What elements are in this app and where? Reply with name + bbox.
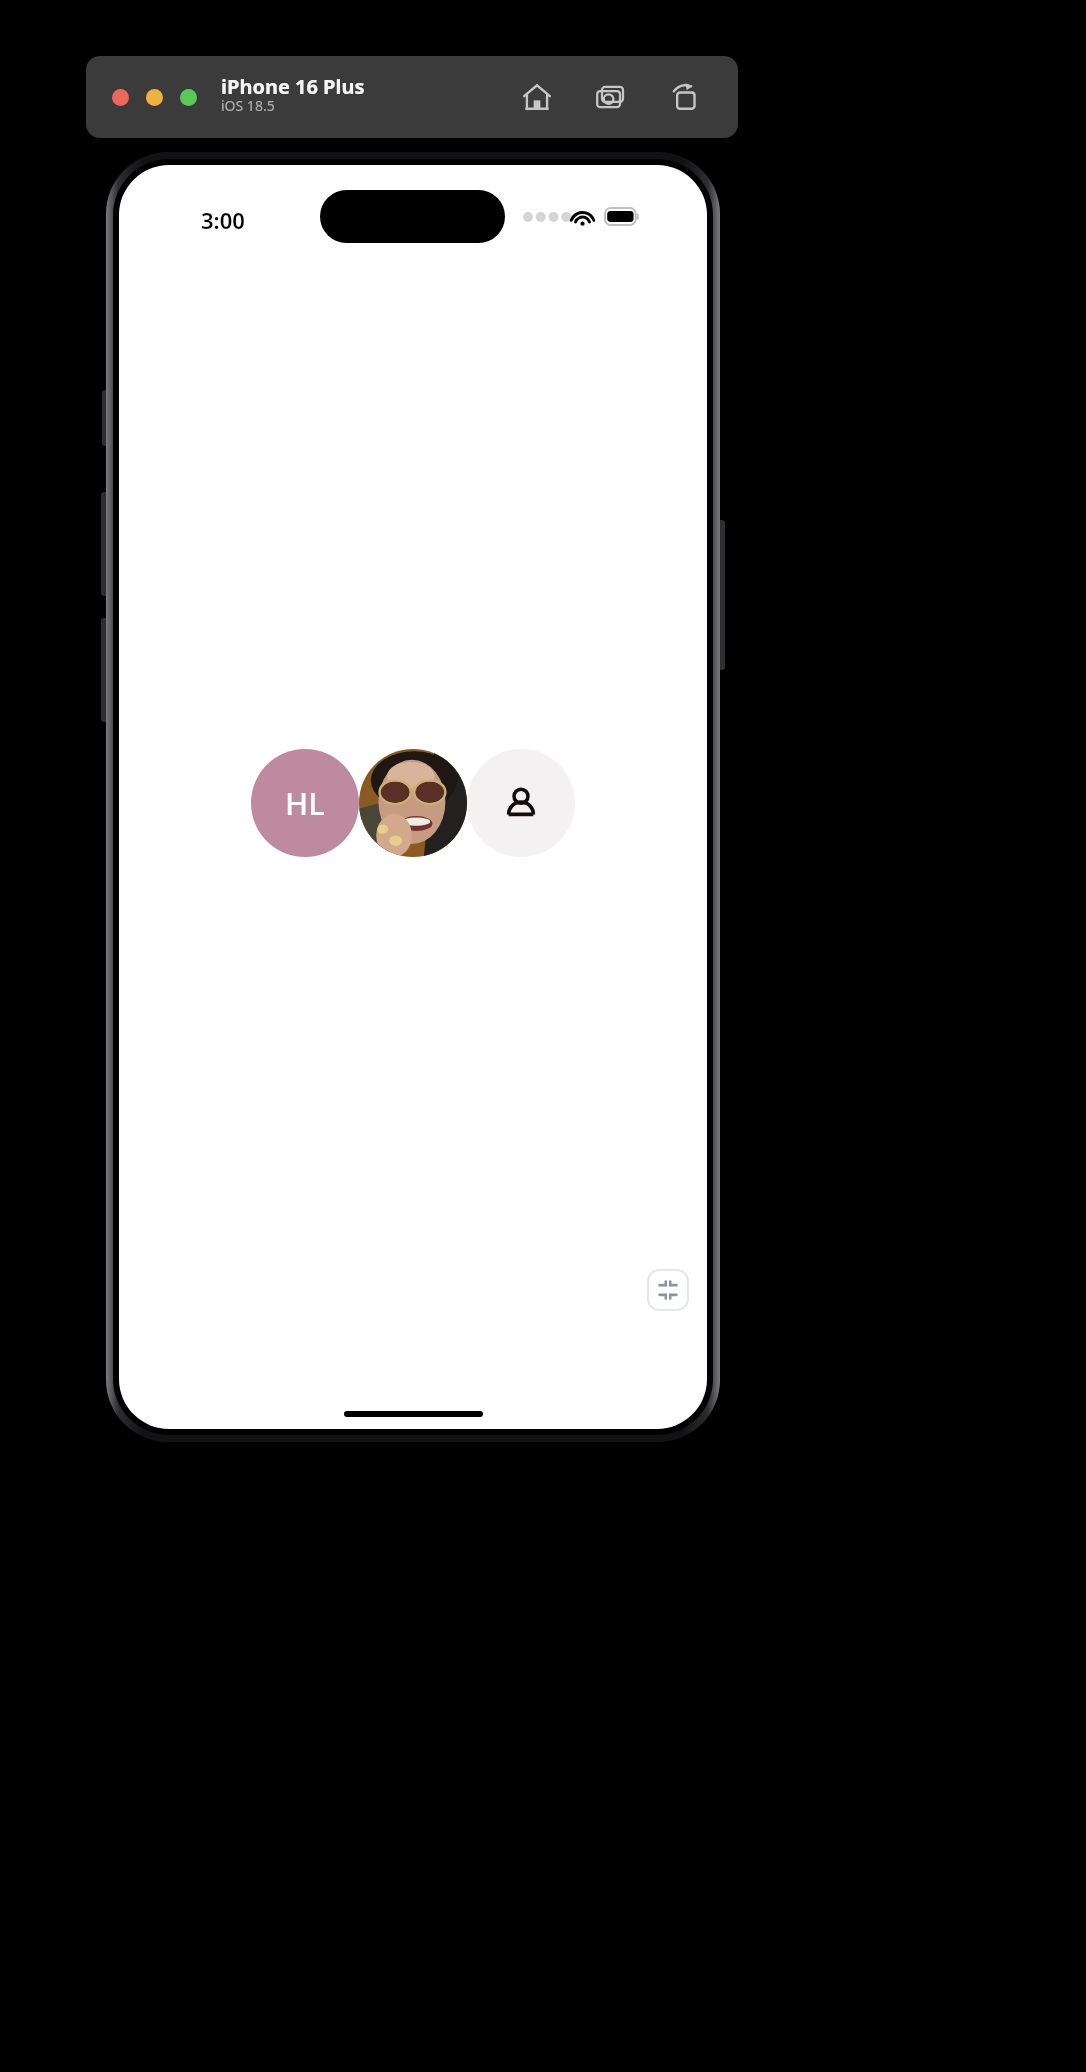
- button[interactable]: Screenshot: [588, 74, 634, 120]
- button[interactable]: HL: [251, 749, 359, 857]
- button[interactable]: [146, 89, 163, 106]
- staticText: iPhone 16 Plus: [221, 73, 365, 100]
- button[interactable]: Profile photo: [359, 749, 467, 857]
- staticText: 3:00: [201, 205, 245, 235]
- staticText: HL: [285, 782, 325, 824]
- button[interactable]: [112, 89, 129, 106]
- button[interactable]: Home: [514, 74, 560, 120]
- button[interactable]: Rotate: [662, 74, 708, 120]
- button[interactable]: [180, 89, 197, 106]
- button[interactable]: Exit full screen: [647, 1269, 689, 1311]
- staticText: iOS 18.5: [221, 96, 275, 115]
- button[interactable]: Add person: [467, 749, 575, 857]
